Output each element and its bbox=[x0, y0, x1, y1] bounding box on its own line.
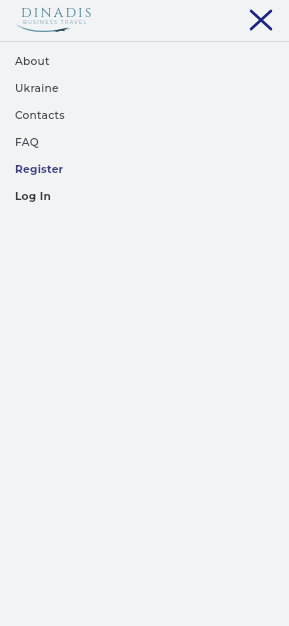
button[interactable]: Log In bbox=[0, 183, 289, 210]
button[interactable]: Ukraine bbox=[0, 75, 289, 102]
staticText: DINADIS bbox=[21, 4, 94, 22]
staticText: About bbox=[15, 55, 50, 68]
button[interactable]: Close menu bbox=[246, 5, 276, 35]
staticText: Contacts bbox=[15, 109, 65, 122]
button[interactable]: FAQ bbox=[0, 129, 289, 156]
staticText: FAQ bbox=[15, 136, 39, 149]
button[interactable]: Register bbox=[0, 156, 289, 183]
staticText: Log In bbox=[15, 190, 52, 203]
button[interactable]: About bbox=[0, 48, 289, 75]
staticText: Register bbox=[15, 163, 64, 176]
staticText: BUSINESS TRAVEL bbox=[23, 19, 88, 25]
staticText: Ukraine bbox=[15, 82, 59, 95]
button[interactable]: Contacts bbox=[0, 102, 289, 129]
